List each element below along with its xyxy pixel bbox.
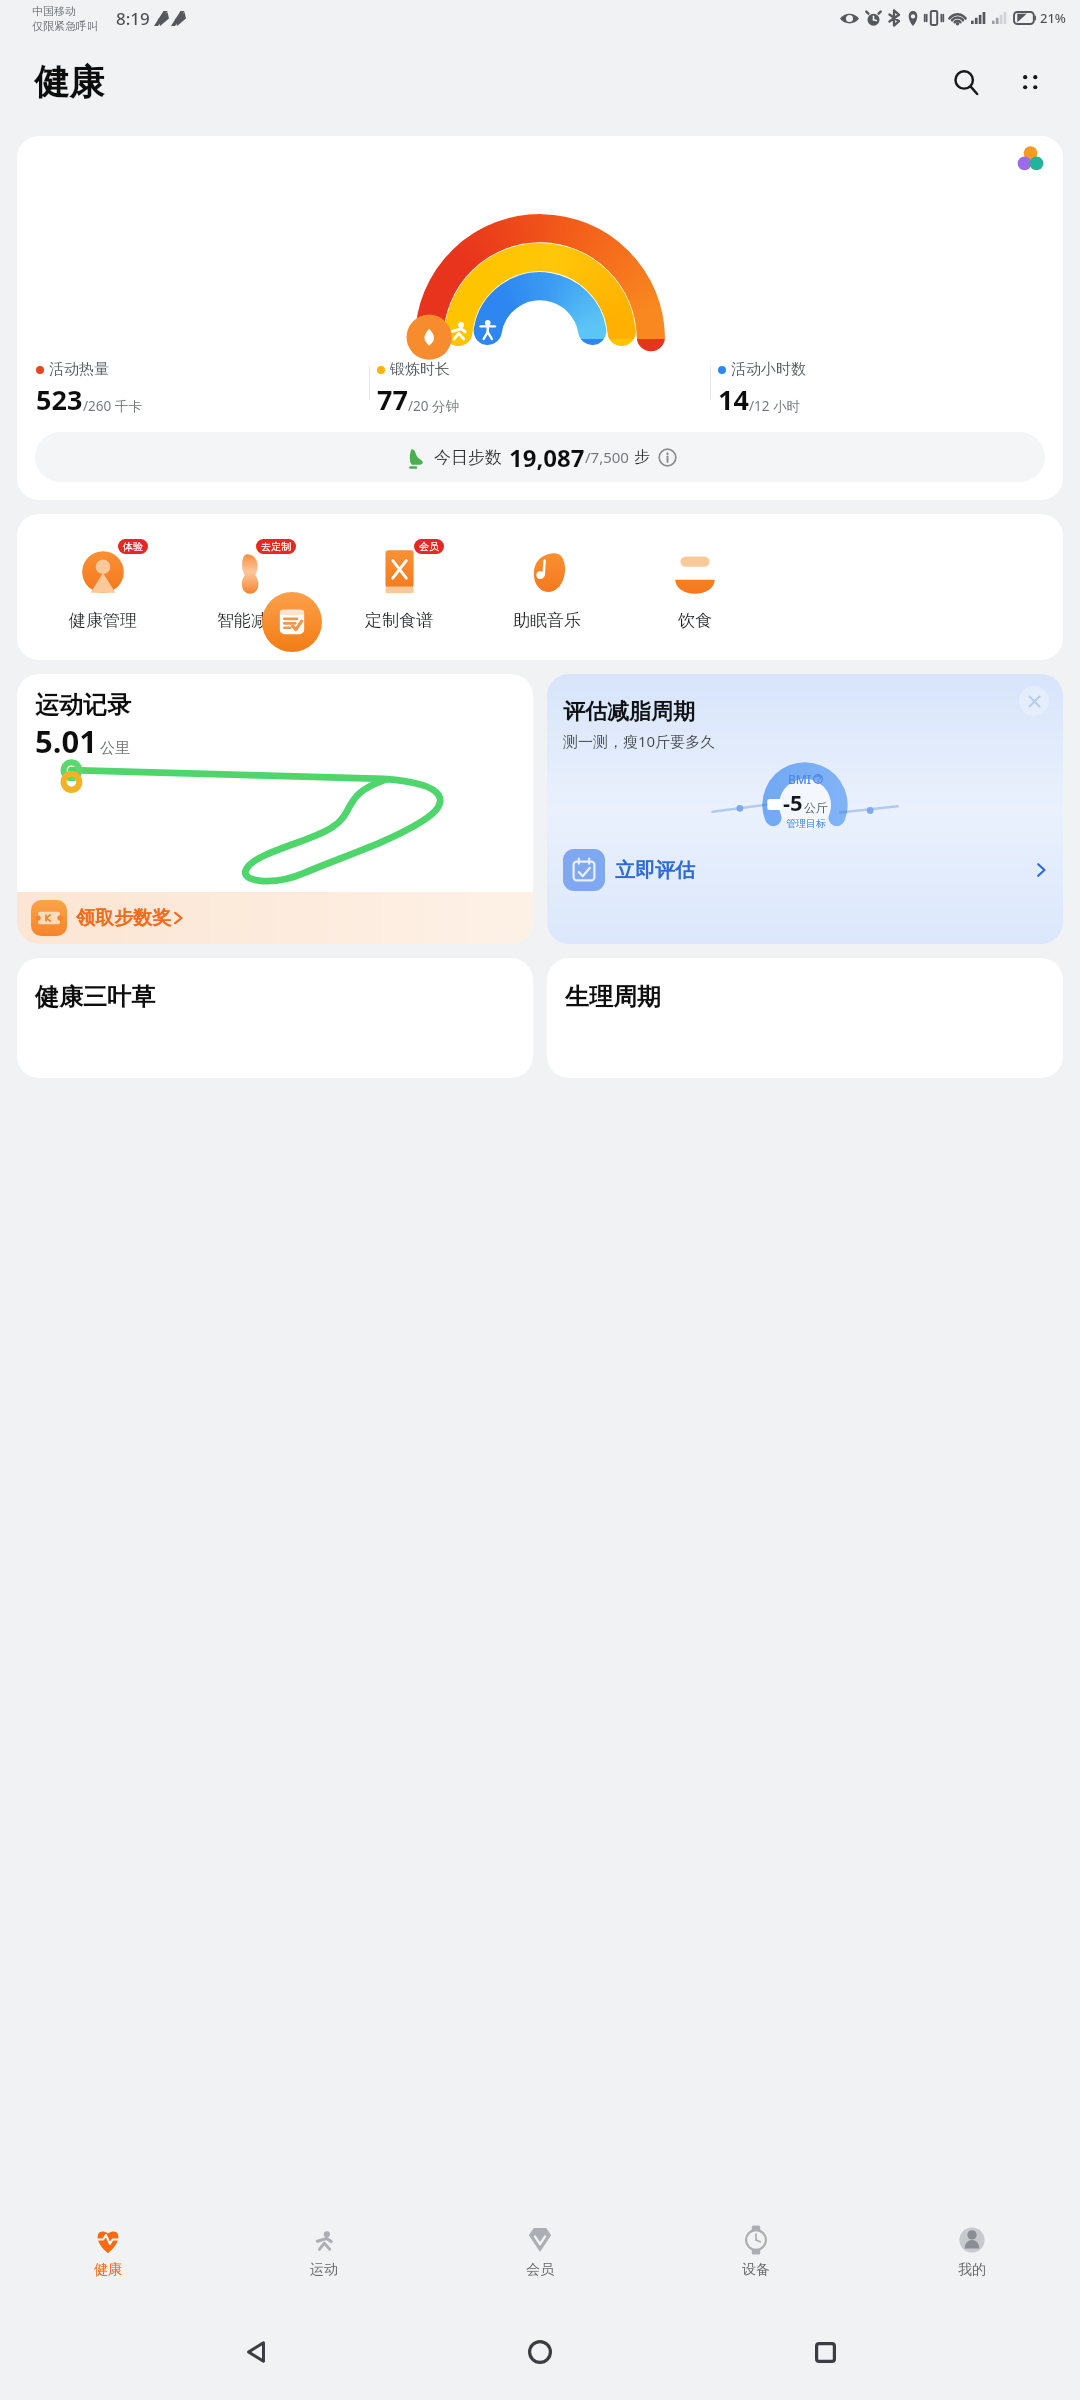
staticText: 健康三叶草 [35,982,155,1012]
staticText: 公里 [100,739,130,758]
button[interactable]: 会员 [325,514,473,660]
button[interactable]: Close [1019,686,1049,716]
staticText: 立即评估 [615,858,695,883]
staticText: 健康 [34,60,104,104]
staticText: 步 [634,447,650,467]
button[interactable]: 评估减脂周期 [547,674,1063,944]
staticText: 领取步数奖 [76,906,171,930]
staticText: 评估减脂周期 [563,698,695,726]
button[interactable]: 去定制 [177,514,325,660]
button[interactable]: 生理周期 [547,958,1063,1078]
staticText: /260 千卡 [83,397,142,415]
staticText: 77 [377,381,408,418]
button[interactable]: More options [1006,58,1054,106]
staticText: 活动小时数 [731,360,806,379]
staticText: 运动 [310,2261,338,2279]
button[interactable]: Back [227,2323,285,2381]
staticText: 21% [1040,9,1066,27]
button[interactable]: 今日步数 [35,432,1045,482]
button[interactable]: 活动热量 [17,136,1063,500]
staticText: 仅限紧急呼叫 [32,19,98,33]
staticText: 健康 [94,2261,122,2279]
staticText: 中国移动 [32,4,76,18]
staticText: /20 分钟 [408,397,459,415]
staticText: -5 [783,787,803,817]
button[interactable]: 运动记录 [17,674,533,944]
staticText: 管理目标 [786,817,826,830]
button[interactable]: Recents [796,2323,854,2381]
staticText: BMI [788,771,812,787]
staticText: 8:19 [116,7,150,30]
button[interactable]: 助眠音乐 [473,514,621,660]
staticText: 体验 [123,540,143,553]
staticText: 测一测，瘦10斤要多久 [563,731,716,751]
button[interactable]: 设备 [648,2200,864,2304]
button[interactable]: 健康 [0,2200,216,2304]
staticText: 14 [718,381,749,418]
button[interactable]: 会员 [432,2200,648,2304]
button[interactable]: Search [942,58,990,106]
staticText: 智能减脂 [217,610,285,631]
button[interactable]: 我的 [864,2200,1080,2304]
staticText: 饮食 [678,610,712,631]
staticText: 5.01 [35,720,97,762]
staticText: 公斤 [804,800,828,815]
staticText: 锻炼时长 [390,360,450,379]
staticText: 设备 [742,2261,770,2279]
staticText: 会员 [526,2261,554,2279]
button[interactable]: 饮食 [621,514,769,660]
staticText: 助眠音乐 [513,610,581,631]
button[interactable]: Health records [262,592,322,652]
staticText: 523 [36,381,83,418]
staticText: 19,087 [509,441,585,474]
staticText: 生理周期 [565,982,661,1012]
button[interactable]: Profile [997,136,1063,180]
staticText: 去定制 [261,540,291,553]
button[interactable]: 领取步数奖 [17,892,533,944]
button[interactable]: 体验 [29,514,177,660]
button[interactable]: 健康三叶草 [17,958,533,1078]
staticText: 我的 [958,2261,986,2279]
button[interactable]: Home [511,2323,569,2381]
staticText: /12 小时 [749,397,800,415]
staticText: 会员 [419,540,439,553]
button[interactable]: 运动 [216,2200,432,2304]
staticText: 健康管理 [69,610,137,631]
staticText: 定制食谱 [365,610,433,631]
staticText: 今日步数 [434,447,502,468]
staticText: 活动热量 [49,360,109,379]
staticText: /7,500 [585,447,629,467]
staticText: 运动记录 [35,690,131,720]
